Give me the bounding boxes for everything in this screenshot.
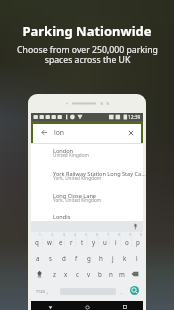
staticText: n (109, 270, 113, 278)
staticText: l (136, 254, 138, 262)
staticText: 9 (129, 233, 131, 237)
button[interactable]: l (131, 249, 143, 266)
button[interactable]: p (132, 232, 143, 249)
button[interactable]: u (99, 232, 110, 249)
button[interactable]: g (83, 249, 95, 266)
button[interactable]: o (121, 232, 132, 249)
button[interactable]: Long Close Lane (31, 186, 143, 208)
staticText: c (76, 270, 79, 278)
staticText: . (121, 289, 123, 295)
staticText: h (99, 254, 103, 262)
button[interactable]: Shift (31, 265, 48, 282)
button[interactable]: v (83, 265, 94, 282)
staticText: f (75, 254, 78, 262)
button[interactable]: w (43, 232, 55, 249)
staticText: u (103, 238, 107, 246)
button[interactable]: e (55, 232, 66, 249)
staticText: 1 (39, 233, 41, 237)
staticText: 2 (51, 233, 53, 237)
button[interactable]: x (60, 265, 72, 282)
staticText: s (49, 254, 52, 262)
staticText: Londis (53, 213, 71, 221)
staticText: k (123, 254, 127, 262)
other: Clear (128, 130, 134, 136)
button[interactable]: Back (33, 124, 141, 143)
staticText: g (87, 254, 91, 262)
staticText: 5 (85, 233, 87, 237)
button[interactable]: Home (69, 301, 106, 310)
staticText: United Kingdom (53, 152, 89, 158)
other: Voice input (132, 223, 139, 230)
button[interactable]: d (57, 249, 70, 266)
staticText: , (47, 289, 49, 295)
staticText: t (81, 238, 84, 246)
button[interactable]: ?123 (32, 282, 50, 301)
button[interactable]: k (119, 249, 131, 266)
button[interactable]: Recents (106, 301, 143, 310)
staticText: a (36, 254, 40, 262)
staticText: York, United Kingdom (53, 197, 102, 203)
button[interactable]: f (70, 249, 83, 266)
staticText: Choose from over 250,000 parking spaces … (17, 44, 158, 65)
staticText: b (98, 270, 102, 278)
button[interactable]: Search (130, 286, 139, 295)
staticText: m (119, 270, 125, 278)
staticText: z (53, 270, 56, 278)
button[interactable]: m (116, 265, 127, 282)
staticText: lon (54, 128, 65, 137)
staticText: o (125, 238, 129, 246)
button[interactable]: c (72, 265, 83, 282)
button[interactable]: z (48, 265, 60, 282)
staticText: Long Close Lane (53, 192, 96, 200)
button[interactable]: a (31, 249, 44, 266)
staticText: j (112, 254, 114, 262)
button[interactable]: n (105, 265, 116, 282)
staticText: i (115, 238, 117, 246)
staticText: 7 (107, 233, 109, 237)
staticText: d (62, 254, 66, 262)
staticText: 4 (74, 233, 76, 237)
staticText: 8 (118, 233, 120, 237)
button[interactable]: , (42, 282, 54, 301)
button[interactable]: q (31, 232, 43, 249)
button[interactable]: Londis (31, 207, 143, 229)
other: Back (41, 129, 48, 136)
staticText: London (53, 147, 74, 155)
staticText: 0 (140, 233, 142, 237)
staticText: 3 (63, 233, 65, 237)
button[interactable]: York Railway Station Long Stay Ca... (31, 164, 143, 186)
button[interactable]: h (95, 249, 107, 266)
staticText: ?123 (36, 289, 46, 295)
button[interactable]: London (31, 141, 143, 163)
staticText: 6 (96, 233, 98, 237)
button[interactable]: i (110, 232, 121, 249)
button[interactable]: Backspace (127, 265, 143, 282)
button[interactable]: r (66, 232, 77, 249)
staticText: York Railway Station Long Stay Ca... (53, 170, 146, 178)
staticText: q (35, 238, 39, 246)
staticText: Parking Nationwide (22, 22, 152, 40)
staticText: p (136, 238, 140, 246)
button[interactable]: y (88, 232, 99, 249)
button[interactable]: Back (31, 301, 69, 310)
staticText: 12:39 (128, 114, 141, 121)
staticText: w (47, 238, 52, 246)
staticText: York, United Kingdom (53, 175, 102, 181)
button[interactable]: j (107, 249, 119, 266)
staticText: v (87, 270, 91, 278)
button[interactable]: b (94, 265, 105, 282)
staticText: y (92, 238, 96, 246)
button[interactable]: t (77, 232, 88, 249)
staticText: r (70, 238, 73, 246)
staticText: e (59, 238, 63, 246)
button[interactable]: s (44, 249, 57, 266)
staticText: x (64, 270, 68, 278)
